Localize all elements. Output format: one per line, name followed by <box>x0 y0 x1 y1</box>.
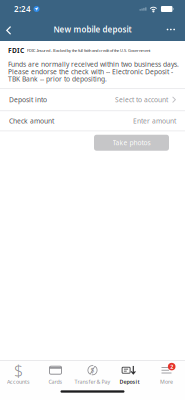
staticText: Transfer & Pay <box>74 378 110 385</box>
staticText: TBK Bank -- prior to depositing. <box>8 75 107 83</box>
staticText: $ <box>14 360 23 381</box>
staticText: Take photos <box>112 138 150 147</box>
button[interactable]: Check amount <box>0 111 185 131</box>
staticText: FDIC-Insured - Backed by the full faith … <box>27 48 150 53</box>
staticText: FDIC <box>8 46 24 55</box>
button[interactable]: $ <box>74 360 111 389</box>
staticText: More <box>160 378 173 385</box>
button[interactable]: Deposit into <box>0 89 185 111</box>
staticText: Deposit into <box>9 95 47 104</box>
staticText: New mobile deposit <box>53 24 131 35</box>
staticText: Cards <box>48 378 62 385</box>
button[interactable]: 2 <box>148 360 185 389</box>
staticText: 2:24 <box>14 4 31 14</box>
button[interactable]: Cards <box>37 360 74 389</box>
button[interactable]: More options <box>161 23 181 36</box>
staticText: $ <box>90 366 94 375</box>
staticText: 2 <box>170 363 173 370</box>
staticText: Select to account <box>115 95 168 104</box>
button[interactable]: Deposit <box>111 360 148 389</box>
staticText: Accounts <box>7 378 30 385</box>
staticText: Enter amount <box>133 116 176 125</box>
button[interactable]: $ <box>0 360 37 389</box>
staticText: Funds are normally received within two b… <box>8 60 179 69</box>
staticText: Please endorse the check with -- Electro… <box>8 67 173 76</box>
button[interactable]: Take photos <box>94 135 169 151</box>
staticText: Check amount <box>9 116 54 125</box>
button[interactable]: Back <box>4 19 18 40</box>
staticText: Deposit <box>119 378 139 385</box>
